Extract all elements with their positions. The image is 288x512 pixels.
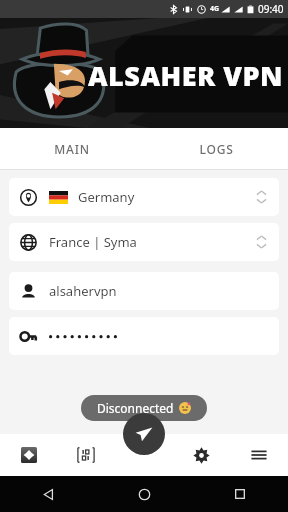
staticText: Disconnected [97,400,174,416]
button[interactable]: Binary log [57,434,114,476]
button[interactable]: Germany [9,178,279,216]
button[interactable]: Add configuration [0,434,57,476]
button[interactable]: Menu [230,434,288,476]
button[interactable] [9,317,279,355]
staticText: ALSAHER VPN [88,57,284,94]
staticText: Germany [78,188,135,206]
staticText: MAIN [54,141,90,157]
button[interactable]: LOGS [144,128,288,169]
button[interactable]: alsahervpn [9,272,279,310]
button[interactable]: Settings [172,434,230,476]
staticText: France | Syma [49,233,137,251]
staticText: 4G [210,4,220,14]
button[interactable]: Connect [123,413,165,455]
staticText: LOGS [199,141,234,157]
staticText: alsahervpn [49,282,117,300]
staticText: 09:40 [258,2,284,16]
button[interactable]: MAIN [0,128,144,169]
button[interactable]: Disconnected [81,395,207,421]
button[interactable]: France | Syma [9,223,279,261]
